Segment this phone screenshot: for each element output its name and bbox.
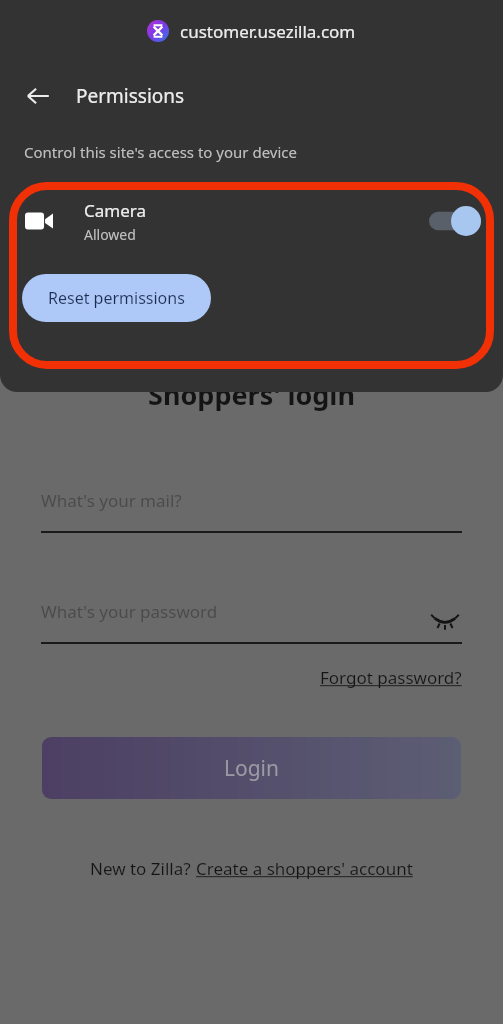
staticText: Reset permissions: [48, 287, 185, 309]
button[interactable]: Create a shoppers' account: [196, 857, 413, 880]
staticText: Permissions: [76, 83, 185, 109]
staticText: customer.usezilla.com: [180, 20, 356, 43]
button[interactable]: Reset permissions: [22, 274, 211, 322]
button[interactable]: Camera: [0, 190, 503, 252]
staticText: Login: [224, 754, 280, 783]
button[interactable]: What's your mail?: [41, 489, 462, 533]
staticText: Shoppers' login: [148, 376, 355, 413]
staticText: New to Zilla?: [90, 857, 196, 880]
button[interactable]: Forgot password?: [320, 666, 462, 689]
button[interactable]: Back: [16, 74, 60, 118]
staticText: Control this site's access to your devic…: [24, 142, 297, 162]
staticText: Create a shoppers' account: [196, 857, 413, 880]
staticText: Forgot password?: [320, 666, 462, 689]
staticText: What's your password: [41, 600, 218, 623]
button[interactable]: Show password: [428, 602, 462, 636]
button[interactable]: Login: [42, 737, 461, 799]
staticText: Camera: [84, 199, 146, 222]
button[interactable]: Camera permission toggle: [429, 205, 481, 237]
staticText: Allowed: [84, 225, 136, 244]
button[interactable]: What's your password: [41, 600, 462, 644]
staticText: What's your mail?: [41, 489, 182, 512]
